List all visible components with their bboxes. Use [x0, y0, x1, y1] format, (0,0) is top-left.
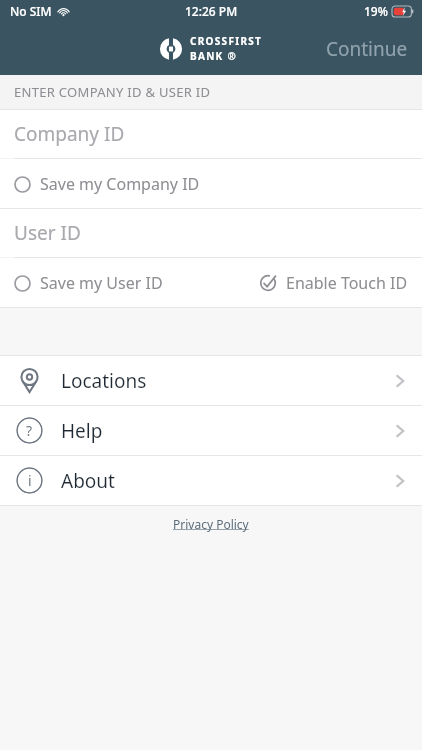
staticText: About [61, 468, 115, 494]
button[interactable]: Save my Company ID [0, 173, 422, 195]
other: Locations [16, 367, 43, 394]
staticText: Help [61, 418, 103, 444]
staticText: Locations [61, 368, 147, 394]
button[interactable]: Locations [0, 356, 422, 405]
staticText: Save my User ID [40, 272, 163, 294]
staticText: Enable Touch ID [286, 272, 408, 294]
staticText: Save my Company ID [40, 173, 200, 195]
staticText: User ID [14, 220, 81, 246]
staticText: 12:26 PM [185, 3, 238, 19]
button[interactable]: Company ID [0, 110, 422, 158]
staticText: CROSSFIRST [190, 34, 263, 48]
staticText: i [28, 471, 32, 490]
staticText: ? [26, 421, 33, 440]
staticText: Company ID [14, 121, 125, 147]
button[interactable]: Save my User ID [0, 272, 259, 294]
other: Help [16, 417, 43, 444]
staticText: No SIM [10, 3, 52, 19]
button[interactable]: User ID [0, 209, 422, 257]
button[interactable]: Privacy Policy [173, 516, 249, 532]
other: About [16, 467, 43, 494]
button[interactable]: About [0, 456, 422, 505]
staticText: BANK ® [190, 49, 238, 63]
button[interactable]: Enable Touch ID [259, 272, 422, 294]
button[interactable]: Continue [312, 28, 422, 70]
button[interactable]: Help [0, 406, 422, 455]
staticText: Continue [326, 36, 408, 62]
staticText: 19% [364, 3, 388, 19]
staticText: ENTER COMPANY ID & USER ID [14, 83, 211, 101]
